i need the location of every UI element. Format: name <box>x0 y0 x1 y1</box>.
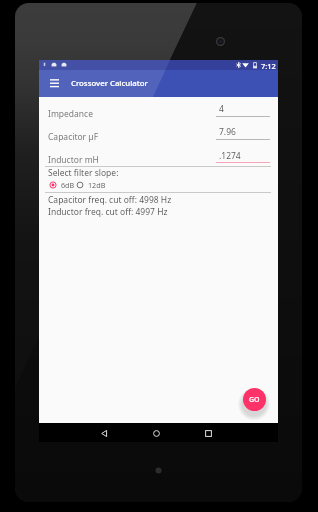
staticText: .1274 <box>219 150 241 162</box>
button[interactable]: GO <box>243 388 266 411</box>
button[interactable] <box>39 148 278 170</box>
staticText: 6dB <box>61 180 75 190</box>
staticText: Capacitor freq. cut off: 4998 Hz <box>48 194 172 206</box>
staticText: Inductor freq. cut off: 4997 Hz <box>48 206 168 218</box>
staticText: Inductor mH <box>48 154 99 166</box>
staticText: GO <box>249 395 260 405</box>
staticText: Impedance <box>48 108 93 120</box>
staticText: 4 <box>219 103 224 115</box>
button[interactable] <box>39 103 278 125</box>
staticText: 7:12 <box>261 61 276 71</box>
staticText: Capacitor µF <box>48 131 99 143</box>
button[interactable]: Open navigation menu <box>47 76 61 90</box>
staticText: Select filter slope: <box>48 167 119 179</box>
button[interactable]: Home <box>149 426 163 440</box>
button[interactable]: Back <box>97 426 111 440</box>
button[interactable]: 12dB <box>76 180 106 190</box>
button[interactable]: 6dB <box>49 180 75 190</box>
staticText: Crossover Calculator <box>71 78 148 89</box>
button[interactable]: Recent apps <box>201 426 215 440</box>
staticText: 7.96 <box>219 126 236 138</box>
staticText: 12dB <box>88 180 106 190</box>
button[interactable] <box>39 125 278 147</box>
